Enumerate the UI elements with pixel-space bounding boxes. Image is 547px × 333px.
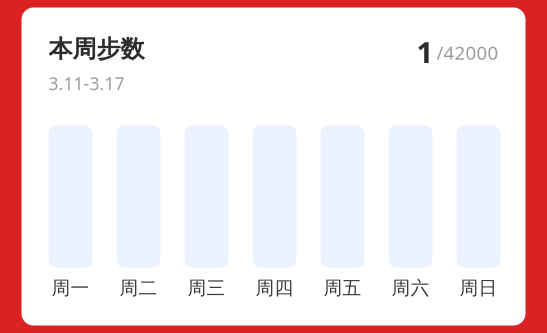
staticText: 周三 xyxy=(187,276,225,299)
button[interactable]: 本周步数 xyxy=(21,7,525,325)
staticText: 周五 xyxy=(323,276,361,299)
staticText: 周一 xyxy=(51,276,89,299)
staticText: 周四 xyxy=(255,276,293,299)
staticText: 周二 xyxy=(119,276,157,299)
staticText: 周日 xyxy=(459,276,497,299)
staticText: 本周步数 xyxy=(48,34,144,64)
staticText: /42000 xyxy=(436,40,498,65)
staticText: 1 xyxy=(416,32,433,71)
staticText: 周六 xyxy=(391,276,429,299)
staticText: 3.11-3.17 xyxy=(48,72,124,95)
